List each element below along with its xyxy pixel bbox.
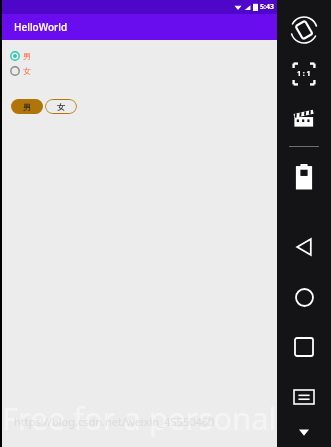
staticText: Free for a personal (2, 397, 277, 439)
button[interactable]: 男 (10, 49, 31, 62)
button[interactable]: 男 (11, 99, 43, 114)
button[interactable]: 女 (45, 99, 77, 114)
button[interactable]: 女 (10, 64, 31, 77)
button[interactable]: Actual size (284, 54, 324, 94)
button[interactable]: Battery (284, 157, 324, 197)
button[interactable]: Menu (282, 375, 326, 419)
button[interactable]: Recent apps (282, 325, 326, 369)
button[interactable]: Back (282, 225, 326, 269)
button[interactable]: Collapse (293, 421, 315, 443)
button[interactable]: Record screen (284, 98, 324, 138)
staticText: 女 (57, 102, 65, 112)
staticText: 男 (23, 102, 31, 112)
button[interactable]: Home (282, 275, 326, 319)
staticText: 5:43 (260, 2, 274, 12)
staticText: HelloWorld (14, 20, 68, 34)
button[interactable]: Rotate (284, 10, 324, 50)
staticText: https://blog.csdn.net/weixin_45550460 (14, 414, 215, 429)
staticText: 1 : 1 (297, 69, 311, 79)
staticText: 女 (23, 66, 31, 76)
staticText: 男 (23, 51, 31, 61)
